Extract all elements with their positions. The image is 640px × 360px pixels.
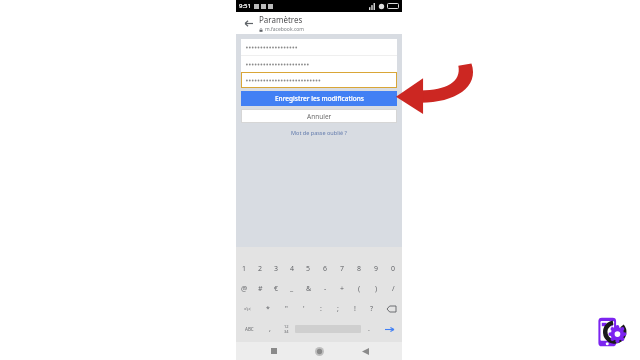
button[interactable]: * [259, 299, 277, 319]
staticText: , [269, 324, 271, 334]
button[interactable]: Password field [246, 72, 392, 88]
staticText: 9:51 [239, 2, 251, 10]
staticText: 7 [340, 264, 345, 274]
button[interactable]: ABC [236, 319, 262, 339]
staticText: 8 [357, 264, 362, 274]
button[interactable]: Mot de passe oublié ? [291, 129, 347, 136]
staticText: / [392, 284, 395, 294]
button[interactable]: & [300, 279, 317, 299]
button[interactable]: 3 [268, 259, 284, 279]
button[interactable]: Password field [246, 56, 392, 72]
button[interactable]: _ [284, 279, 300, 299]
button[interactable]: Enregistrer les modifications [241, 91, 397, 106]
staticText: ; [337, 304, 339, 314]
button[interactable]: Password field [246, 39, 392, 55]
staticText: # [258, 284, 263, 294]
button[interactable]: 2 [252, 259, 268, 279]
button[interactable]: 1 [236, 259, 252, 279]
button[interactable]: 0 [385, 259, 402, 279]
staticText: Paramètres [259, 14, 303, 25]
staticText: Enregistrer les modifications [275, 94, 364, 103]
staticText: * [266, 304, 270, 314]
button[interactable]: - [317, 279, 334, 299]
staticText: 12 [284, 324, 289, 329]
staticText: ? [370, 304, 374, 314]
button[interactable]: =\< [236, 299, 259, 319]
button[interactable]: 5 [300, 259, 317, 279]
button[interactable]: Annuler [241, 109, 397, 123]
button[interactable]: Settings logo [589, 309, 635, 355]
staticText: =\< [244, 306, 251, 312]
button[interactable]: : [312, 299, 329, 319]
staticText: Annuler [307, 112, 332, 121]
button[interactable]: " [277, 299, 295, 319]
button[interactable]: 6 [317, 259, 334, 279]
staticText: ( [358, 284, 361, 294]
staticText: m.facebook.com [265, 26, 304, 33]
staticText: 34 [284, 329, 289, 334]
staticText: 0 [391, 264, 396, 274]
button[interactable]: + [334, 279, 351, 299]
button[interactable]: 9 [368, 259, 385, 279]
button[interactable]: ) [368, 279, 385, 299]
staticText: _ [290, 284, 294, 294]
staticText: & [306, 284, 312, 294]
button[interactable]: Back [241, 16, 255, 30]
staticText: " [285, 304, 288, 314]
button[interactable]: ; [329, 299, 346, 319]
button[interactable]: . [361, 319, 377, 339]
staticText: ABC [245, 326, 254, 332]
staticText: : [320, 304, 322, 314]
button[interactable]: / [385, 279, 402, 299]
button[interactable]: 4 [284, 259, 300, 279]
staticText: ! [354, 304, 356, 314]
button[interactable]: ! [346, 299, 363, 319]
staticText: ' [303, 304, 305, 314]
button[interactable]: Backspace [380, 299, 402, 319]
staticText: 1 [242, 264, 247, 274]
button[interactable]: 7 [334, 259, 351, 279]
button[interactable]: Enter [377, 319, 402, 339]
staticText: ) [375, 284, 378, 294]
staticText: 6 [323, 264, 328, 274]
staticText: 4 [290, 264, 295, 274]
staticText: 2 [258, 264, 263, 274]
staticText: - [324, 284, 327, 294]
button[interactable]: 8 [351, 259, 368, 279]
staticText: @ [241, 284, 248, 294]
button[interactable]: # [252, 279, 268, 299]
button[interactable]: ' [295, 299, 312, 319]
button[interactable]: @ [236, 279, 252, 299]
button[interactable]: ( [351, 279, 368, 299]
staticText: 9 [374, 264, 379, 274]
button[interactable]: ? [363, 299, 380, 319]
button[interactable]: , [262, 319, 278, 339]
button[interactable]: Back [357, 343, 373, 359]
staticText: . [368, 324, 370, 334]
staticText: 3 [274, 264, 279, 274]
button[interactable]: € [268, 279, 284, 299]
staticText: + [340, 284, 345, 294]
button[interactable]: Recents [266, 343, 282, 359]
button[interactable]: Home [311, 343, 327, 359]
staticText: € [274, 284, 279, 294]
button[interactable]: Numbers [278, 319, 295, 339]
staticText: 5 [306, 264, 311, 274]
